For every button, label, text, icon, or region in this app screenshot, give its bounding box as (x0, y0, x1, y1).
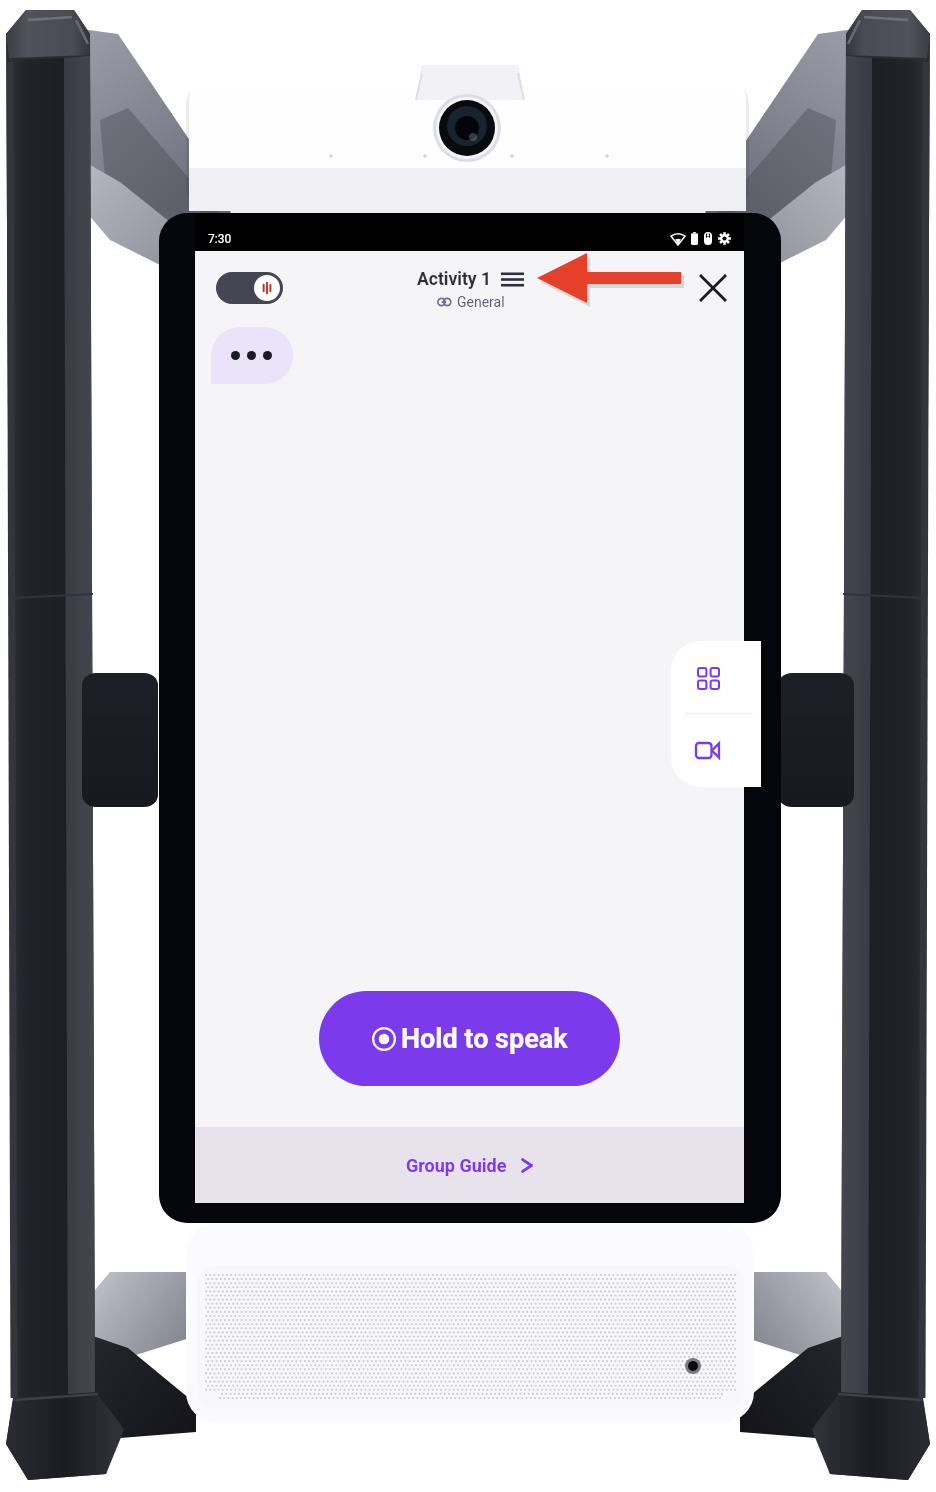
staticText: Group Guide (406, 1155, 507, 1176)
button[interactable]: Microphone toggle (216, 272, 283, 304)
button[interactable]: Close (689, 264, 737, 312)
button[interactable]: Activity 1 (417, 269, 524, 290)
button[interactable]: Hold to speak (319, 991, 620, 1086)
staticText: General (457, 294, 505, 310)
button[interactable]: Apps (671, 641, 761, 713)
staticText: Hold to speak (401, 1023, 568, 1055)
button[interactable]: Group Guide (195, 1127, 744, 1203)
staticText: Activity 1 (417, 269, 492, 290)
staticText: 7:30 (208, 232, 232, 246)
button[interactable]: Video call (671, 714, 761, 787)
